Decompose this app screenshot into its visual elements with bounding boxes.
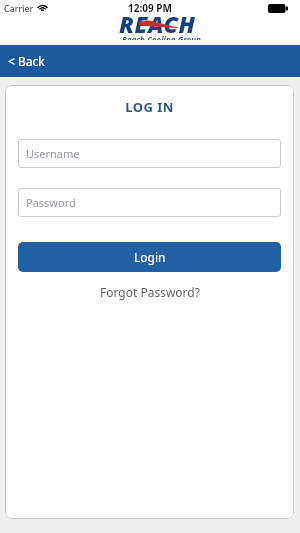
staticText: Reach Cooling Group	[122, 34, 201, 40]
staticText: Username	[26, 146, 80, 161]
button[interactable]: Forgot Password?	[100, 284, 200, 300]
staticText: Carrier	[4, 2, 34, 14]
button[interactable]: Login	[18, 242, 281, 272]
staticText: Password	[26, 195, 76, 210]
staticText: < Back	[8, 53, 45, 69]
staticText: 12:09 PM	[128, 1, 172, 15]
staticText: Forgot Password?	[100, 284, 200, 300]
button[interactable]: < Back	[0, 45, 300, 77]
staticText: LOG IN	[18, 98, 281, 116]
button[interactable]: Username	[18, 139, 281, 168]
staticText: REACH	[119, 8, 196, 39]
staticText: Login	[134, 249, 166, 265]
button[interactable]: Password	[18, 188, 281, 217]
